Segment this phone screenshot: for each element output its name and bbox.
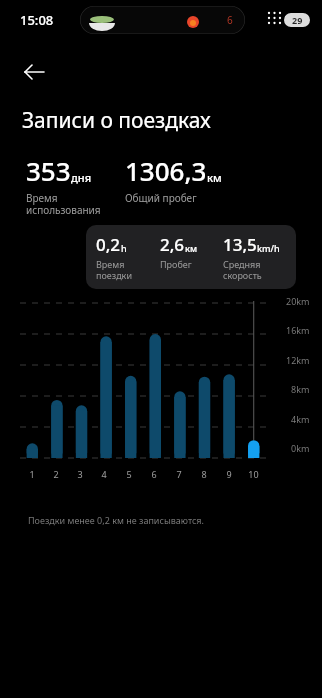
staticText: Время поездки xyxy=(96,258,132,281)
staticText: Общий пробег xyxy=(125,191,197,205)
staticText: km/h xyxy=(257,242,280,254)
staticText: 7 xyxy=(176,468,182,480)
staticText: 6 xyxy=(227,13,233,27)
staticText: 5 xyxy=(126,468,132,480)
staticText: 9 xyxy=(226,468,232,480)
staticText: Записи о поездках xyxy=(22,106,211,135)
staticText: Поездки менее 0,2 км не записываются. xyxy=(28,514,322,526)
staticText: 3 xyxy=(77,468,83,480)
staticText: 2,6 xyxy=(160,233,185,256)
staticText: Время использования xyxy=(26,191,101,217)
staticText: 13,5 xyxy=(223,233,257,256)
staticText: дня xyxy=(71,170,92,185)
staticText: 10 xyxy=(248,468,259,480)
staticText: Средняя скорость xyxy=(223,258,262,281)
button[interactable]: 0,2 xyxy=(86,225,296,289)
staticText: 8 xyxy=(201,468,207,480)
staticText: 15:08 xyxy=(20,11,54,29)
button[interactable]: Back xyxy=(14,52,54,92)
staticText: 29 xyxy=(292,14,303,26)
staticText: 12km xyxy=(286,354,310,366)
staticText: 1 xyxy=(29,468,35,480)
staticText: 1306,3 xyxy=(125,153,207,188)
staticText: 8km xyxy=(291,383,310,395)
staticText: 20km xyxy=(286,295,310,307)
staticText: 6 xyxy=(151,468,157,480)
staticText: 16km xyxy=(286,324,310,336)
staticText: 0km xyxy=(291,442,310,454)
staticText: 2 xyxy=(53,468,59,480)
staticText: Пробег xyxy=(160,258,192,270)
staticText: км xyxy=(185,242,198,254)
staticText: 0,2 xyxy=(96,233,121,256)
staticText: км xyxy=(207,170,222,185)
staticText: 4km xyxy=(291,413,310,425)
staticText: 4 xyxy=(101,468,107,480)
staticText: h xyxy=(121,242,127,254)
staticText: 353 xyxy=(26,153,71,188)
